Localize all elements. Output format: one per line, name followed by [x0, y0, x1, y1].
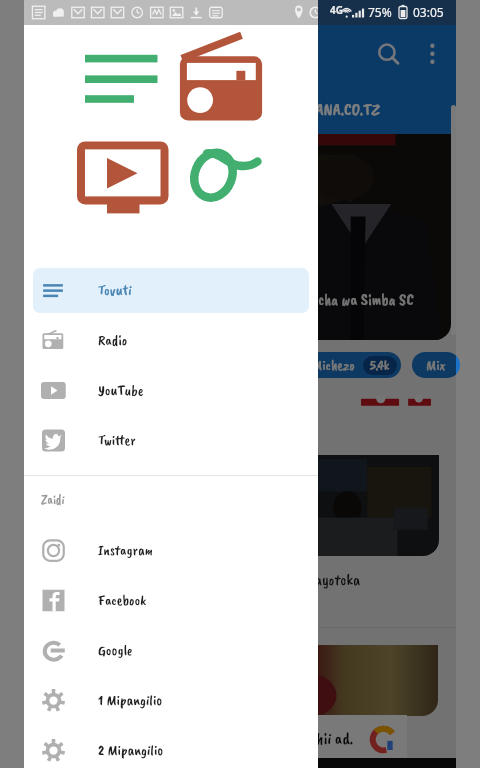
button[interactable]: Google — [33, 628, 309, 673]
staticText: Michezo — [312, 356, 355, 375]
staticText: Radio — [98, 331, 128, 350]
staticText: Twitter — [98, 431, 136, 450]
button[interactable]: Radio — [33, 318, 309, 363]
staticText: Google — [98, 641, 133, 660]
staticText: Pakua app hii ad. — [250, 728, 354, 749]
button[interactable]: Instagram — [33, 528, 309, 573]
staticText: 03:05 — [413, 4, 444, 20]
button[interactable]: YouTube — [33, 368, 309, 413]
button[interactable]: Mix — [412, 352, 460, 378]
staticText: MAKUNGWANA.CO.TZ — [250, 99, 380, 120]
staticText: Zaidi — [41, 492, 65, 508]
staticText: 5.4k — [370, 358, 390, 374]
staticText: YouTube — [98, 381, 144, 400]
staticText: Mabasi yanayotoka — [250, 570, 361, 590]
button[interactable]: Twitter — [33, 418, 309, 463]
staticText: Mix — [426, 356, 446, 375]
button[interactable]: Michezo — [298, 352, 401, 378]
button[interactable]: Tovuti — [33, 268, 309, 313]
staticText: 75% — [368, 4, 392, 20]
staticText: 1 Mipangilio — [98, 691, 163, 710]
staticText: 4G — [330, 3, 343, 17]
button[interactable]: 2 Mipangilio — [33, 728, 309, 768]
staticText: Facebook — [98, 591, 147, 610]
staticText: Tovuti — [98, 281, 132, 300]
staticText: Uchaguzi wa kocha wa Simba SC — [229, 289, 414, 310]
staticText: 2 Mipangilio — [98, 741, 164, 760]
button[interactable]: Facebook — [33, 578, 309, 623]
staticText: Instagram — [98, 541, 153, 560]
button[interactable]: 1 Mipangilio — [33, 678, 309, 723]
